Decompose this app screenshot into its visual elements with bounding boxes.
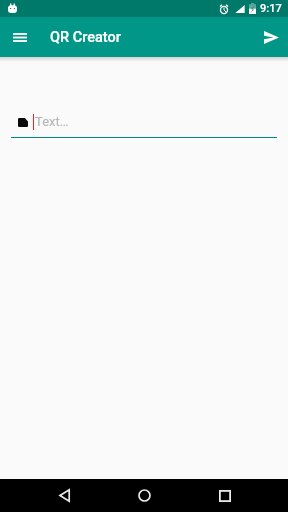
button[interactable]: Recent apps (208, 479, 242, 512)
button[interactable]: Send (257, 23, 285, 51)
staticText: QR Creator (50, 29, 121, 46)
button[interactable]: Open navigation drawer (6, 23, 34, 51)
button[interactable]: Home (127, 479, 161, 512)
button[interactable]: Text… (35, 114, 69, 129)
staticText: 9:17 (260, 2, 282, 15)
button[interactable]: Back (47, 479, 81, 512)
